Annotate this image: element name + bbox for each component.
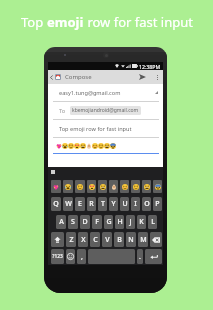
button[interactable]: Backspace [150, 232, 162, 247]
button[interactable]: M [138, 232, 148, 247]
button[interactable]: Emoji [87, 180, 96, 193]
staticText: 12:38PM [139, 63, 161, 70]
staticText: C [93, 235, 98, 245]
button[interactable]: J [126, 215, 135, 229]
staticText: To [59, 107, 66, 115]
button[interactable]: T [98, 197, 107, 211]
button[interactable]: Emoji [109, 180, 118, 193]
button[interactable]: A [56, 215, 66, 229]
staticText: D [82, 217, 88, 227]
button[interactable]: Emoji [153, 180, 162, 193]
button[interactable]: F [92, 215, 102, 229]
staticText: V [105, 235, 110, 245]
button[interactable]: Back [49, 70, 54, 84]
staticText: Top [21, 13, 47, 31]
staticText: W [65, 199, 72, 209]
staticText: B [117, 235, 122, 245]
staticText: O [144, 199, 150, 209]
button[interactable]: B [114, 232, 124, 247]
button[interactable]: N [126, 232, 136, 247]
staticText: Y [111, 199, 116, 209]
staticText: A [59, 217, 64, 227]
staticText: emoji [47, 13, 84, 31]
staticText: Compose [65, 73, 92, 81]
button[interactable]: P [153, 197, 162, 211]
button[interactable]: ?123 [51, 249, 64, 264]
button[interactable]: Emoji [131, 180, 140, 193]
staticText: H [117, 217, 123, 227]
button[interactable]: C [90, 232, 100, 247]
button[interactable]: Y [109, 197, 118, 211]
button[interactable]: Send [138, 70, 147, 84]
staticText: kbemojiandroid@gmail.com [72, 107, 139, 114]
button[interactable]: More options [153, 70, 161, 84]
staticText: L [151, 217, 155, 227]
staticText: Top emoji row for fast input [59, 125, 132, 133]
staticText: R [89, 199, 94, 209]
button[interactable]: Shift [51, 232, 64, 247]
staticText: K [139, 217, 144, 227]
button[interactable]: I [131, 197, 140, 211]
button[interactable]: L [148, 215, 157, 229]
staticText: Q [53, 199, 59, 209]
button[interactable]: Enter [145, 249, 162, 264]
staticText: E [78, 199, 82, 209]
staticText: J [129, 217, 132, 227]
button[interactable]: D [80, 215, 90, 229]
button[interactable]: O [142, 197, 151, 211]
button[interactable]: E [75, 197, 85, 211]
staticText: M [140, 235, 147, 245]
button[interactable]: Emoji keyboard [66, 249, 75, 264]
staticText: G [106, 217, 112, 227]
button[interactable]: R [87, 197, 96, 211]
other: Enter [150, 254, 158, 260]
button[interactable]: Emoji [120, 180, 129, 193]
other: Backspace [152, 237, 160, 243]
button[interactable]: U [120, 197, 129, 211]
staticText: row for fast input [84, 13, 193, 31]
staticText: T [101, 199, 105, 209]
other: Shift [54, 236, 61, 243]
button[interactable]: Emoji [142, 180, 151, 193]
staticText: . [139, 252, 141, 262]
button[interactable]: K [137, 215, 146, 229]
staticText: easy1.tung@gmail.com [59, 89, 121, 97]
button[interactable]: Emoji [75, 180, 85, 193]
button[interactable]: G [104, 215, 113, 229]
button[interactable]: Emoji [98, 180, 107, 193]
button[interactable]: Emoji [51, 180, 61, 193]
other: Emoji keyboard [67, 253, 74, 260]
button[interactable]: X [78, 232, 88, 247]
staticText: N [128, 235, 134, 245]
staticText: S [71, 217, 75, 227]
staticText: I [134, 199, 137, 209]
staticText: , [81, 252, 83, 262]
button[interactable]: Emoji [63, 180, 73, 193]
button[interactable]: . [137, 249, 143, 264]
button[interactable]: Q [51, 197, 61, 211]
button[interactable]: , [77, 249, 86, 264]
staticText: U [122, 199, 128, 209]
staticText: ?123 [52, 253, 63, 260]
button[interactable]: S [68, 215, 78, 229]
staticText: X [81, 235, 86, 245]
button[interactable]: H [115, 215, 124, 229]
button[interactable]: V [102, 232, 112, 247]
staticText: P [155, 199, 160, 209]
staticText: F [95, 217, 99, 227]
button[interactable]: W [63, 197, 73, 211]
button[interactable]: Z [66, 232, 76, 247]
staticText: Z [69, 235, 74, 245]
